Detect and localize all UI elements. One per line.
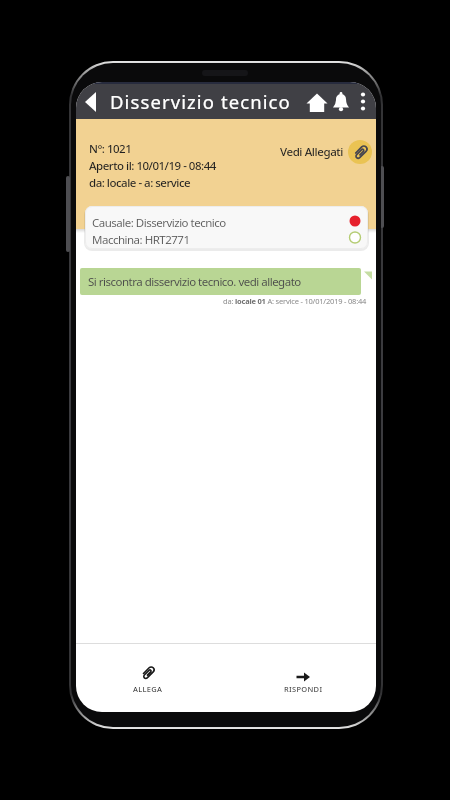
staticText: da: locale 01 A: service - 10/01/2019 - …	[223, 296, 367, 306]
button[interactable]: RISPONDI	[273, 665, 333, 707]
staticText: Si riscontra disservizio tecnico. vedi a…	[88, 274, 301, 290]
staticText: Disservizio tecnico	[110, 89, 291, 114]
staticText: Causale: Disservizio tecnico	[92, 215, 226, 231]
button[interactable]: ALLEGA	[118, 665, 178, 707]
button[interactable]: Causale: Disservizio tecnico	[85, 206, 368, 249]
button[interactable]	[305, 90, 329, 114]
staticText: Vedi Allegati	[280, 144, 344, 160]
staticText: RISPONDI	[284, 684, 323, 694]
button[interactable]	[329, 90, 353, 114]
button[interactable]: Si riscontra disservizio tecnico. vedi a…	[80, 268, 361, 295]
button[interactable]	[80, 89, 106, 115]
staticText: Macchina: HRT2771	[92, 232, 190, 248]
button[interactable]	[348, 140, 372, 164]
staticText: ALLEGA	[133, 684, 163, 694]
staticText: N°: 1021 Aperto il: 10/01/19 - 08:44 da:…	[89, 141, 216, 190]
button[interactable]	[352, 84, 374, 119]
